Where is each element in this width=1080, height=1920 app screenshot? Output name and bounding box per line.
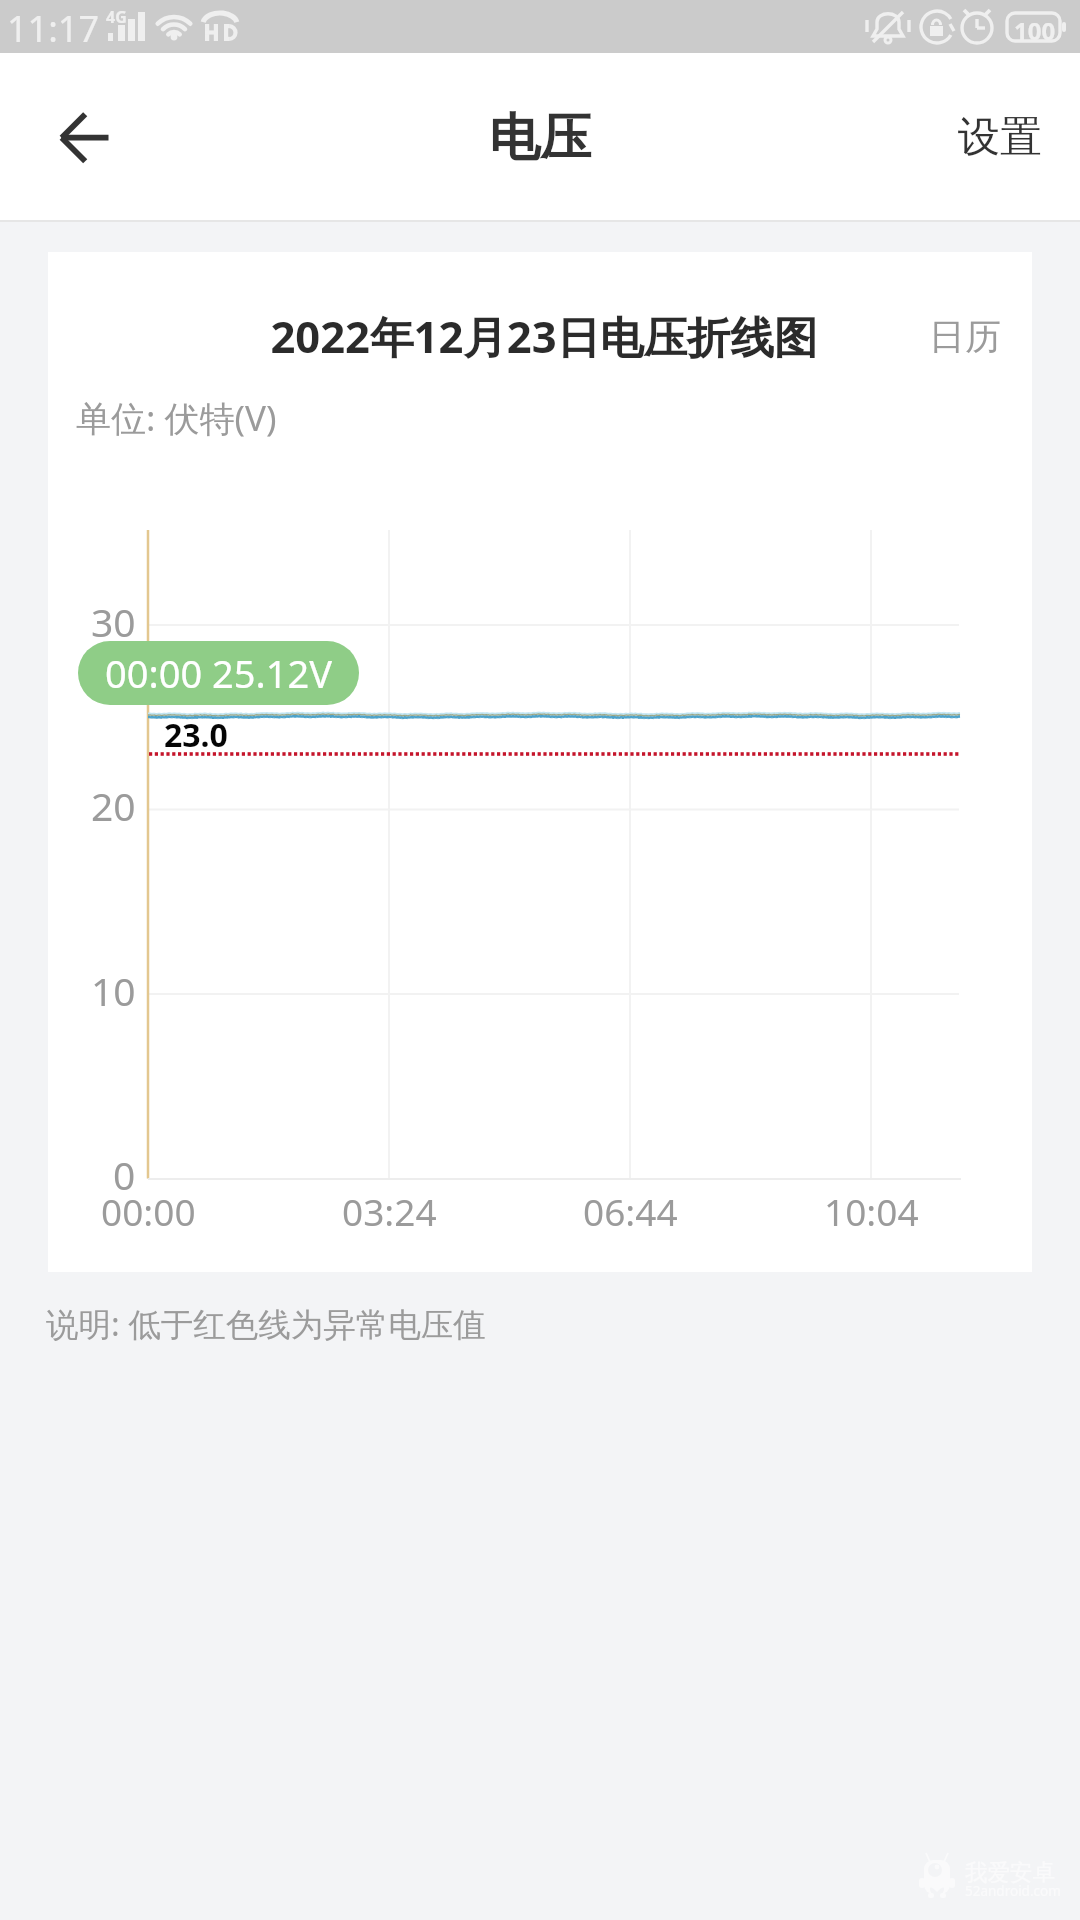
staticText: 4G bbox=[106, 6, 127, 28]
staticText: 电压 bbox=[489, 106, 591, 170]
staticText: 10 bbox=[91, 964, 136, 1017]
staticText: 20 bbox=[91, 779, 136, 832]
staticText: 单位: 伏特(V) bbox=[76, 394, 277, 442]
staticText: 说明: 低于红色线为异常电压值 bbox=[46, 1301, 486, 1345]
staticText: 10:04 bbox=[824, 1186, 919, 1236]
staticText: 11:17 bbox=[7, 4, 100, 53]
staticText: 2022年12月23日电压折线图 bbox=[270, 306, 818, 365]
button[interactable]: 设置 bbox=[958, 111, 1042, 164]
staticText: 03:24 bbox=[342, 1186, 437, 1236]
staticText: 30 bbox=[91, 595, 136, 648]
button[interactable]: 日历 bbox=[929, 314, 1001, 359]
staticText: 23.0 bbox=[164, 713, 228, 757]
staticText: 00:00 bbox=[101, 1186, 196, 1236]
button[interactable]: Back bbox=[30, 85, 138, 185]
staticText: 0 bbox=[113, 1148, 136, 1201]
staticText: 06:44 bbox=[583, 1186, 678, 1236]
staticText: 00:00 25.12V bbox=[105, 647, 332, 699]
staticText: 100 bbox=[1014, 14, 1056, 47]
button[interactable]: 00:00 25.12V bbox=[78, 641, 359, 705]
